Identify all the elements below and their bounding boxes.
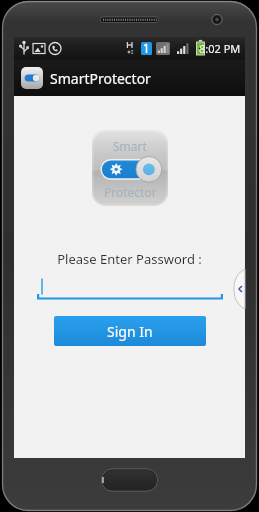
button[interactable]: Open panel: [234, 269, 245, 309]
staticText: Sign In: [107, 322, 153, 341]
button[interactable]: Sign In: [54, 316, 206, 346]
other: SmartProtector logo: [92, 130, 168, 206]
staticText: Smart: [113, 138, 147, 154]
button[interactable]: [37, 274, 223, 300]
staticText: SmartProtector: [50, 69, 151, 88]
staticText: 8:02 PM: [199, 41, 241, 56]
staticText: Protector: [104, 184, 157, 200]
staticText: Please Enter Password :: [57, 250, 202, 268]
